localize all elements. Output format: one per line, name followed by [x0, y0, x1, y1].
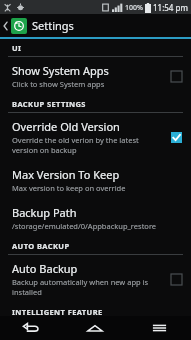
button[interactable]: Back [0, 14, 191, 37]
button[interactable]: Back [0, 316, 63, 340]
staticText: Show System Apps [12, 63, 109, 78]
button[interactable]: Max Version To Keep [0, 161, 191, 199]
staticText: BACKUP SETTINGS [12, 99, 86, 109]
staticText: 100% [125, 3, 143, 13]
staticText: Click to show System apps [12, 79, 105, 89]
staticText: Max version to keep on override [12, 183, 126, 193]
staticText: /storage/emulated/0/Appbackup_restore [12, 221, 157, 231]
button[interactable]: Recent apps [127, 316, 191, 340]
staticText: Max Version To Keep [12, 167, 120, 182]
button[interactable]: Backup Path [0, 199, 191, 237]
staticText: Auto Backup [12, 261, 78, 276]
staticText: Settings [32, 18, 74, 33]
button[interactable]: Override Old Version [0, 113, 191, 161]
staticText: INTELLIGENT FEATURE [12, 307, 103, 316]
staticText: UI [12, 43, 22, 53]
button[interactable]: Home [63, 316, 127, 340]
button[interactable]: Unchecked [169, 272, 183, 286]
staticText: Override the old verion by the latest ve… [12, 135, 139, 155]
staticText: 11:54 pm [153, 2, 188, 13]
button[interactable]: Auto Backup [0, 255, 191, 303]
staticText: Backup automatically when new app is ins… [12, 277, 149, 297]
staticText: Override Old Version [12, 119, 120, 134]
other: Back [2, 20, 9, 32]
staticText: AUTO BACKUP [12, 241, 70, 251]
button[interactable]: Checked [169, 130, 183, 144]
staticText: Backup Path [12, 205, 77, 220]
button[interactable]: Unchecked [169, 69, 183, 83]
button[interactable]: Show System Apps [0, 57, 191, 95]
